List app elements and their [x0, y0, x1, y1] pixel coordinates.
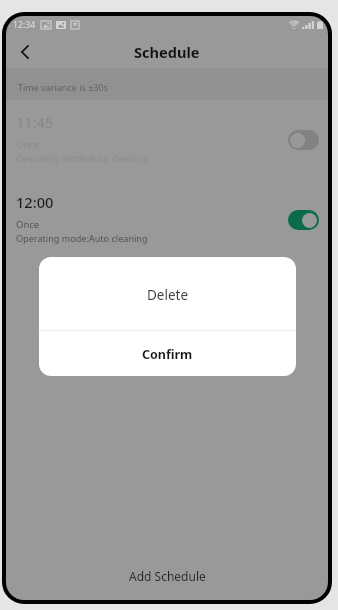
staticText: 12:34	[13, 19, 36, 31]
staticText: Once	[16, 218, 40, 231]
button[interactable]: Add Schedule	[6, 552, 328, 600]
button[interactable]: 11:45	[16, 98, 319, 178]
staticText: Confirm	[142, 346, 193, 363]
button[interactable]: Confirm	[39, 331, 296, 376]
staticText: Time variance is ±30s	[18, 81, 108, 93]
button[interactable]: Delete	[39, 257, 296, 330]
staticText: Delete	[147, 286, 189, 304]
staticText: Operating mode:Auto cleaning	[16, 232, 148, 244]
staticText: Once	[16, 138, 40, 151]
button[interactable]: Turn on schedule	[288, 130, 319, 150]
button[interactable]: Back	[11, 37, 39, 67]
staticText: 11:45	[16, 112, 54, 132]
staticText: Operating mode:Auto cleaning	[16, 152, 148, 164]
button[interactable]: 12:00	[16, 178, 319, 258]
button[interactable]: Turn off schedule	[288, 210, 319, 230]
staticText: Add Schedule	[129, 568, 206, 584]
staticText: 12:00	[16, 192, 54, 212]
staticText: Schedule	[134, 42, 200, 62]
